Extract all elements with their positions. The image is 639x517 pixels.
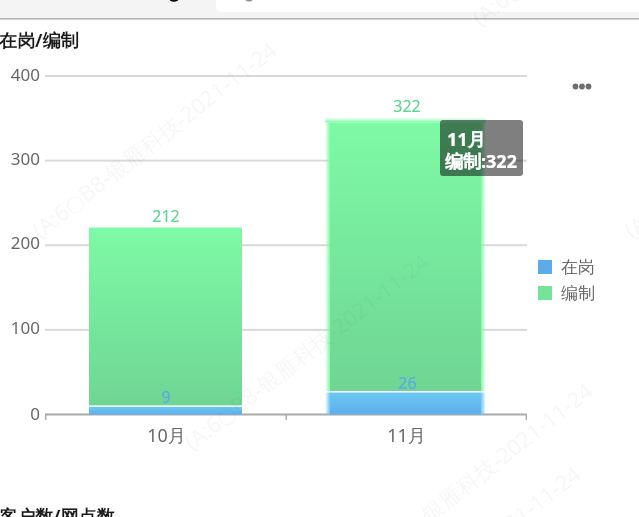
staticText: 26 <box>398 372 417 392</box>
staticText: (A:6○B8-银雁科技-2021-11-24 <box>341 375 599 517</box>
staticText: 10月 <box>147 423 186 447</box>
staticText: 9 <box>161 386 171 406</box>
button[interactable]: 在岗 <box>538 256 598 278</box>
staticText: 300 <box>10 147 40 169</box>
staticText: 编制:322 <box>445 149 517 174</box>
staticText: 11月 <box>387 423 426 447</box>
staticText: (A:6○B8-银雁科技-2021-11-24 <box>465 0 639 32</box>
staticText: 322 <box>393 95 421 115</box>
staticText: 11月 <box>447 127 486 152</box>
staticText: 客户数/网点数 <box>0 504 115 517</box>
staticText: 在岗 <box>561 257 595 278</box>
staticText: 200 <box>10 231 40 253</box>
staticText: (A:6○B8-银雁科技-2021-11-24 <box>0 0 131 32</box>
button[interactable]: 编制 <box>538 282 598 304</box>
staticText: (A:6○B8-银雁科技-2021-11-24 <box>25 34 283 244</box>
staticText: 编制 <box>561 283 595 304</box>
staticText: 0 <box>30 402 40 424</box>
staticText: 在岗/编制 <box>0 28 79 53</box>
staticText: 400 <box>10 63 40 85</box>
staticText: 100 <box>10 316 40 338</box>
button[interactable]: More options <box>568 74 596 99</box>
staticText: 212 <box>152 205 180 225</box>
staticText: (A:6○B8-银雁科技-2021-11-24 <box>177 246 435 456</box>
